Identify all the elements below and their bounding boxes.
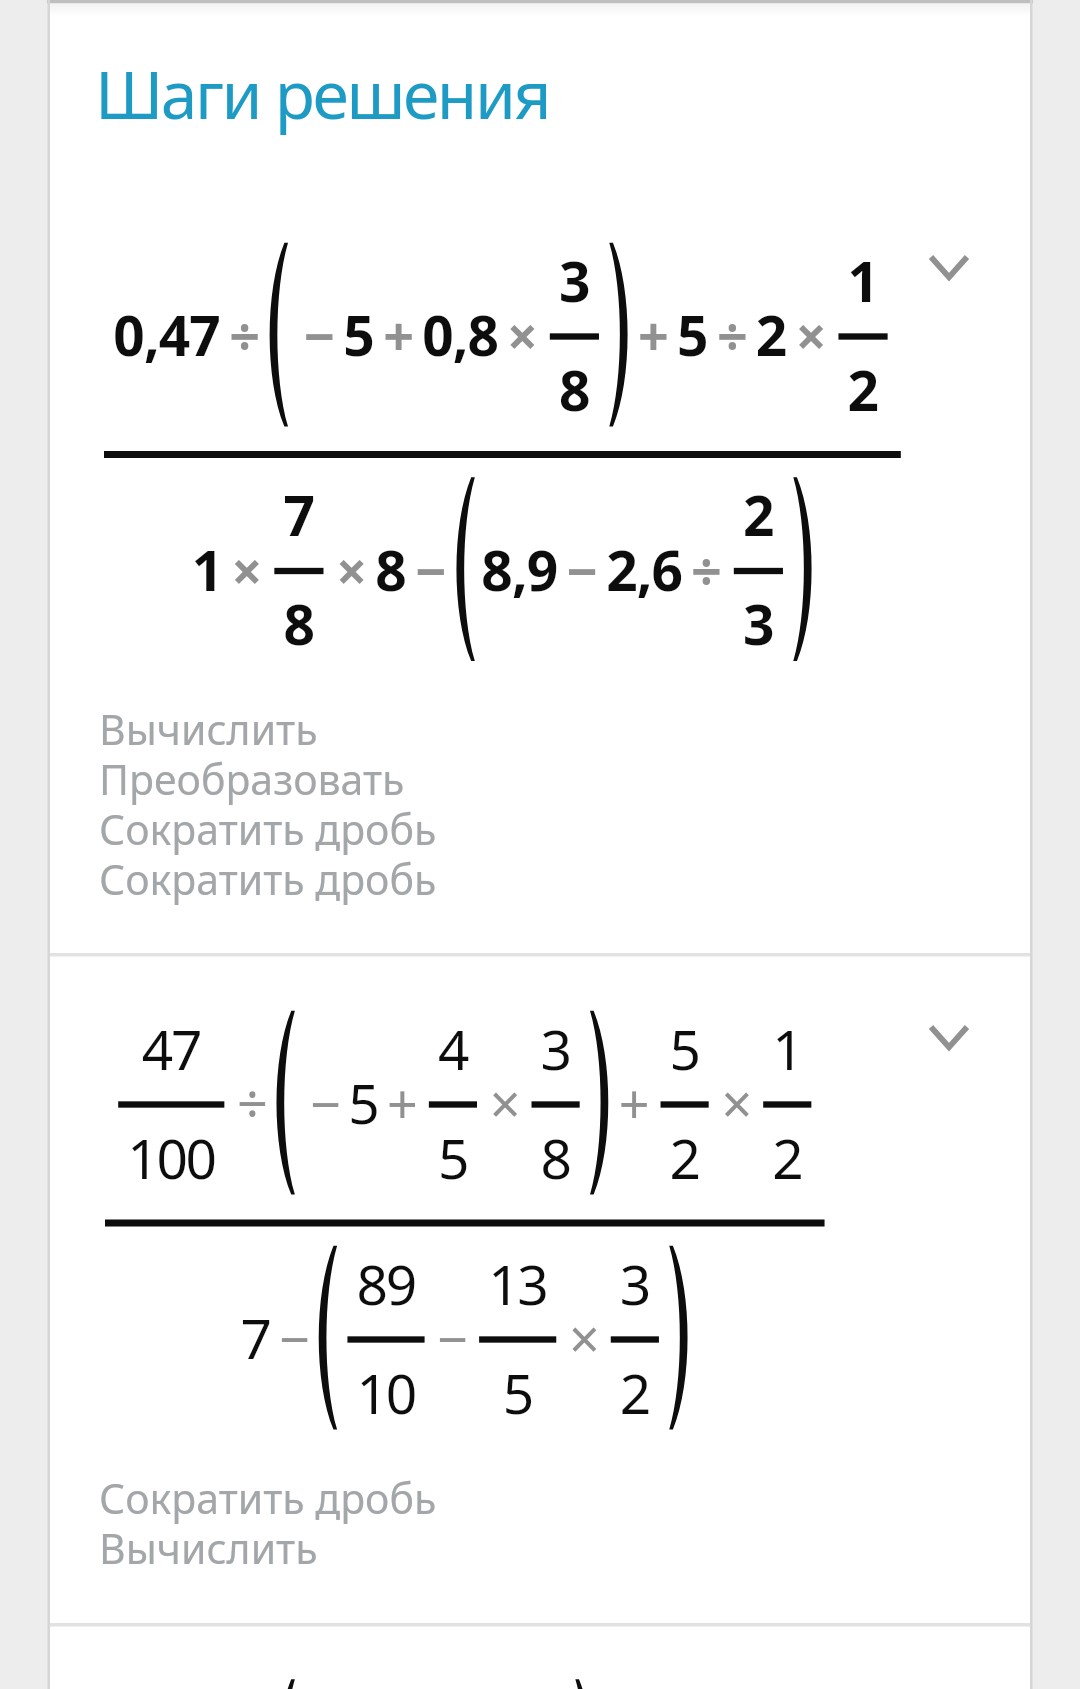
button[interactable]: Шаг 1	[50, 140, 1030, 950]
button[interactable]: Шаг 2	[50, 957, 1030, 1622]
button[interactable]: Свернуть шаг 1	[890, 216, 1008, 334]
button[interactable]: Свернуть шаг 2	[890, 986, 1008, 1104]
